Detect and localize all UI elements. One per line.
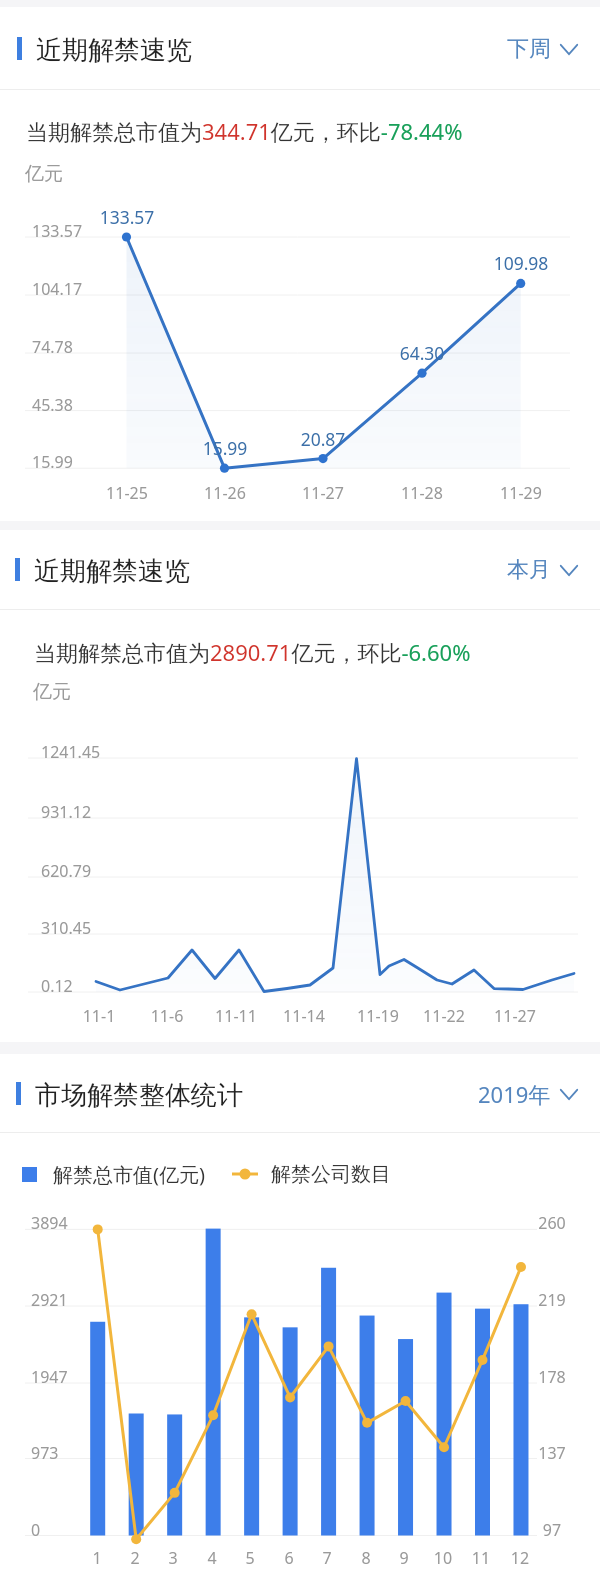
staticText: 11-26 (175, 482, 275, 504)
staticText: 9 (374, 1547, 434, 1569)
staticText: 15.99 (32, 451, 112, 473)
staticText: 11-25 (77, 482, 177, 504)
staticText: 11-19 (328, 1005, 428, 1027)
staticText: 20.87 (263, 427, 383, 451)
staticText: 64.30 (362, 341, 482, 365)
staticText: 11-11 (186, 1005, 286, 1027)
staticText: 11-27 (273, 482, 373, 504)
staticText: 0 (31, 1519, 91, 1541)
staticText: 1241.45 (41, 741, 121, 763)
staticText: 解禁总市值(亿元) (53, 1161, 205, 1188)
staticText: 620.79 (41, 860, 121, 882)
staticText: 260 (522, 1212, 582, 1234)
staticText: 4 (182, 1547, 242, 1569)
staticText: 104.17 (32, 278, 112, 300)
staticText: 973 (31, 1442, 91, 1464)
staticText: 5 (220, 1547, 280, 1569)
staticText: 178 (522, 1366, 582, 1388)
staticText: 11-27 (465, 1005, 565, 1027)
staticText: 11-29 (471, 482, 571, 504)
staticText: 1947 (31, 1366, 91, 1388)
staticText: 12 (490, 1547, 550, 1569)
staticText: 解禁公司数目 (271, 1162, 391, 1187)
staticText: 6 (259, 1547, 319, 1569)
staticText: 133.57 (32, 220, 112, 242)
staticText: 109.98 (461, 251, 581, 275)
staticText: 2921 (31, 1289, 91, 1311)
staticText: 0.12 (41, 975, 121, 997)
staticText: 7 (297, 1547, 357, 1569)
staticText: 74.78 (32, 336, 112, 358)
staticText: 近期解禁速览 (36, 34, 192, 67)
staticText: 近期解禁速览 (34, 555, 190, 588)
button[interactable]: Select year 2019 (478, 1079, 578, 1109)
staticText: 3 (143, 1547, 203, 1569)
staticText: 10 (413, 1547, 473, 1569)
staticText: 219 (522, 1289, 582, 1311)
staticText: 下周 (507, 35, 551, 63)
staticText: 11-1 (49, 1005, 149, 1027)
staticText: 本月 (507, 556, 551, 584)
staticText: 11-22 (394, 1005, 494, 1027)
staticText: 15.99 (165, 436, 285, 460)
button[interactable]: Select this month (507, 556, 578, 584)
staticText: 8 (336, 1547, 396, 1569)
button[interactable]: Select next week (507, 35, 578, 63)
staticText: 133.57 (67, 205, 187, 229)
staticText: 97 (522, 1519, 582, 1541)
staticText: 2019年 (478, 1079, 551, 1109)
staticText: 当期解禁总市值为344.71亿元，环比-78.44% (26, 116, 463, 146)
staticText: 931.12 (41, 801, 121, 823)
staticText: 当期解禁总市值为2890.71亿元，环比-6.60% (34, 637, 471, 667)
staticText: 1 (67, 1547, 127, 1569)
staticText: 11 (451, 1547, 511, 1569)
staticText: 137 (522, 1442, 582, 1464)
staticText: 市场解禁整体统计 (35, 1079, 243, 1112)
staticText: 3894 (31, 1212, 91, 1234)
staticText: 亿元 (33, 680, 153, 704)
staticText: 11-28 (372, 482, 472, 504)
staticText: 11-14 (254, 1005, 354, 1027)
staticText: 2 (105, 1547, 165, 1569)
staticText: 45.38 (32, 394, 112, 416)
staticText: 310.45 (41, 917, 121, 939)
staticText: 亿元 (25, 162, 145, 186)
staticText: 11-6 (117, 1005, 217, 1027)
